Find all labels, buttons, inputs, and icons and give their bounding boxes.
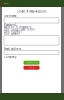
staticText: Must be 8 characters [4,25,31,29]
staticText: Company [4,55,16,59]
staticText: One upper case letter [4,28,35,31]
staticText: One symbol [4,32,20,35]
staticText: Sign up [4,3,9,4]
button[interactable]: Cancel [23,66,39,70]
button[interactable]: Create account [23,61,39,65]
staticText: Create account [26,62,37,64]
staticText: Email address [4,47,21,51]
staticText: Username [4,14,17,18]
staticText: Cancel [29,67,34,69]
staticText: Create A New Account [16,10,46,13]
staticText: One number [4,30,22,33]
staticText: Password [4,23,16,27]
